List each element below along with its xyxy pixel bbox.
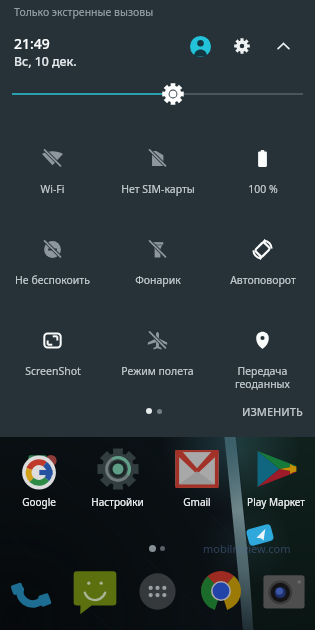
staticText: ИЗМЕНИТЬ [242,404,303,419]
staticText: Передача геоданных [235,364,290,391]
staticText: 21:49 [14,34,50,53]
button[interactable]: ScreenShot [0,312,105,403]
staticText: ScreenShot [25,364,81,378]
button[interactable]: Не беспокоить [0,221,105,312]
button[interactable]: Режим полета [105,312,210,403]
staticText: Только экстренные вызовы [14,5,154,19]
button[interactable]: Автоповорот [210,221,315,312]
button[interactable]: Messaging [63,568,126,614]
button[interactable]: Wi-Fi [0,130,105,221]
button[interactable]: All apps [126,568,189,614]
button[interactable]: Settings [224,28,260,64]
staticText: Настройки [91,495,144,509]
staticText: Вс, 10 дек. [14,53,77,70]
staticText: 100 % [248,182,278,196]
staticText: Фонарик [135,273,181,287]
button[interactable]: Нет SIM-карты [105,130,210,221]
button[interactable]: Brightness [0,77,315,111]
button[interactable]: 100 % [210,130,315,221]
staticText: Wi-Fi [40,182,65,196]
staticText: mobilreview.com [203,541,291,556]
staticText: Gmail [183,495,211,509]
button[interactable]: ИЗМЕНИТЬ [240,402,305,421]
button[interactable]: Collapse [265,28,301,64]
staticText: Нет SIM-карты [121,182,195,196]
button[interactable]: Настройки [78,447,157,515]
staticText: Play Маркет [247,495,305,509]
button[interactable]: Play Маркет [236,447,315,515]
button[interactable]: User [182,28,218,64]
button[interactable]: Camera [252,568,315,614]
button[interactable]: Gmail [157,447,236,515]
button[interactable]: Phone [0,568,63,614]
staticText: Автоповорот [230,273,296,287]
button[interactable]: Chrome [189,568,252,614]
staticText: Не беспокоить [15,273,90,287]
button[interactable]: Фонарик [105,221,210,312]
button[interactable]: Google [0,447,78,515]
staticText: Режим полета [121,364,194,378]
staticText: Google [22,495,56,509]
button[interactable]: Передача геоданных [210,312,315,403]
